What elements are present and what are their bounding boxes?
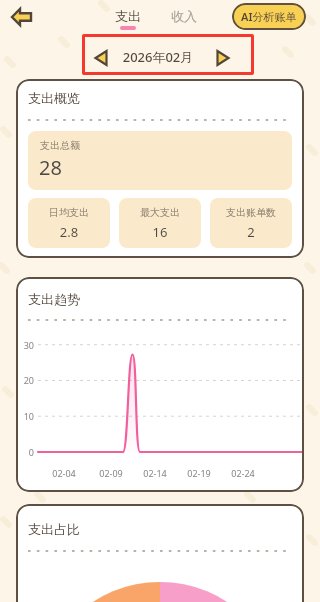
button[interactable] <box>8 5 36 29</box>
staticText: 支出总额 <box>40 139 80 152</box>
staticText: 最大支出 <box>119 206 201 224</box>
staticText: 日均支出 <box>28 206 110 224</box>
staticText: 支出 <box>112 8 144 29</box>
button[interactable]: 支出 <box>112 6 144 32</box>
staticText: 28 <box>39 154 62 181</box>
button[interactable] <box>210 46 234 70</box>
staticText: 30 <box>20 339 34 356</box>
staticText: 收入 <box>168 8 200 29</box>
staticText: 02-04 <box>48 467 80 484</box>
staticText: 20 <box>20 374 34 391</box>
staticText: 10 <box>20 410 34 427</box>
staticText: 0 <box>20 446 34 463</box>
staticText: 支出趋势 <box>28 291 80 307</box>
staticText: 2026年02月 <box>112 48 204 69</box>
staticText: 2 <box>210 223 292 244</box>
button[interactable]: AI分析账单 <box>232 3 306 30</box>
staticText: 02-24 <box>227 467 259 484</box>
staticText: 支出占比 <box>28 521 80 537</box>
staticText: 支出账单数 <box>210 206 292 224</box>
staticText: 2.8 <box>28 223 110 244</box>
staticText: 02-19 <box>183 467 215 484</box>
button[interactable]: 收入 <box>168 6 200 32</box>
staticText: AI分析账单 <box>241 9 297 24</box>
button[interactable] <box>90 46 114 70</box>
staticText: 02-09 <box>95 467 127 484</box>
staticText: 02-14 <box>139 467 171 484</box>
staticText: 16 <box>119 223 201 244</box>
staticText: 支出概览 <box>28 90 80 106</box>
